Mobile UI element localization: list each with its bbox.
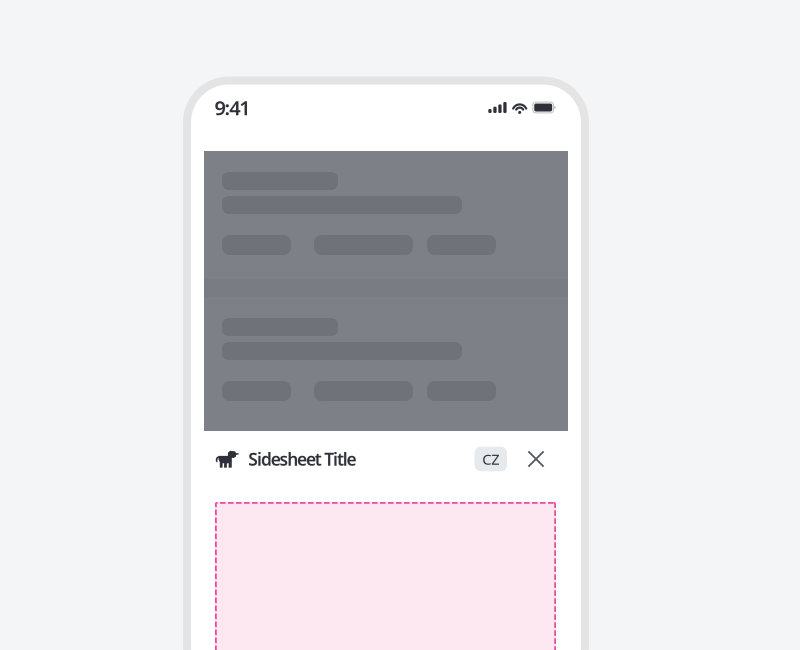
button[interactable]: Dismiss sidesheet xyxy=(191,151,581,431)
button[interactable]: Close xyxy=(523,446,549,472)
staticText: CZ xyxy=(482,449,499,469)
staticText: Sidesheet Title xyxy=(248,447,356,470)
staticText: 9:41 xyxy=(214,94,250,121)
button[interactable]: Language CZ xyxy=(474,447,507,471)
